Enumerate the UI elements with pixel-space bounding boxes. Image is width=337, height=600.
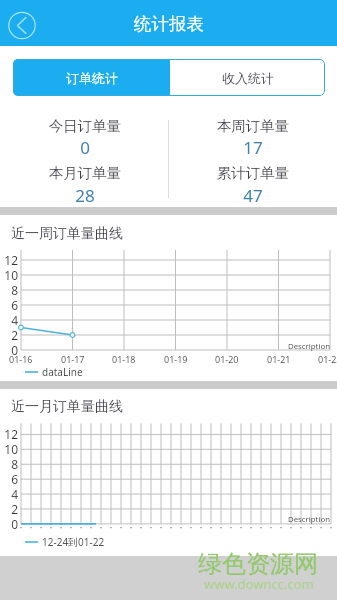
staticText: 4: [11, 312, 18, 328]
staticText: 8: [11, 282, 18, 298]
staticText: 统计报表: [134, 13, 204, 35]
staticText: 本周订单量: [193, 117, 313, 135]
staticText: 28: [25, 184, 145, 207]
staticText: 01-20: [215, 353, 239, 365]
staticText: 01-18: [112, 353, 136, 365]
staticText: 收入统计: [222, 70, 274, 86]
staticText: 4: [11, 486, 18, 502]
staticText: 01-16: [9, 353, 33, 365]
button[interactable]: 本周订单量: [193, 117, 313, 157]
staticText: 0: [11, 342, 18, 358]
staticText: 01-17: [61, 353, 85, 365]
staticText: 绿色资源网: [198, 549, 318, 579]
button[interactable]: 本月订单量: [25, 164, 145, 204]
staticText: 47: [193, 184, 313, 207]
staticText: 8: [11, 456, 18, 472]
button[interactable]: 累计订单量: [193, 164, 313, 204]
staticText: 今日订单量: [25, 117, 145, 135]
staticText: 12-24到01-22: [42, 535, 105, 549]
button[interactable]: Back: [4, 7, 40, 43]
staticText: 6: [11, 297, 18, 313]
staticText: www.downcc.com: [204, 575, 314, 593]
staticText: dataLine: [42, 365, 83, 379]
staticText: 01-22: [318, 353, 337, 365]
staticText: 0: [11, 516, 18, 532]
button[interactable]: 收入统计: [170, 59, 325, 96]
staticText: 0: [25, 136, 145, 159]
button[interactable]: 订单统计: [13, 59, 170, 96]
staticText: Description: [288, 341, 330, 352]
button[interactable]: 今日订单量: [25, 117, 145, 157]
staticText: Description: [288, 514, 330, 525]
staticText: 2: [11, 501, 18, 517]
staticText: 本月订单量: [25, 164, 145, 182]
staticText: 10: [4, 267, 18, 283]
staticText: 累计订单量: [193, 164, 313, 182]
staticText: 12: [4, 252, 18, 268]
staticText: 6: [11, 471, 18, 487]
staticText: 12: [4, 426, 18, 442]
staticText: 近一月订单量曲线: [11, 398, 123, 416]
staticText: 17: [193, 136, 313, 159]
staticText: 2: [11, 327, 18, 343]
staticText: 01-19: [164, 353, 188, 365]
staticText: 01-21: [267, 353, 291, 365]
staticText: 近一周订单量曲线: [11, 225, 123, 243]
staticText: 订单统计: [66, 70, 118, 86]
staticText: 10: [4, 441, 18, 457]
